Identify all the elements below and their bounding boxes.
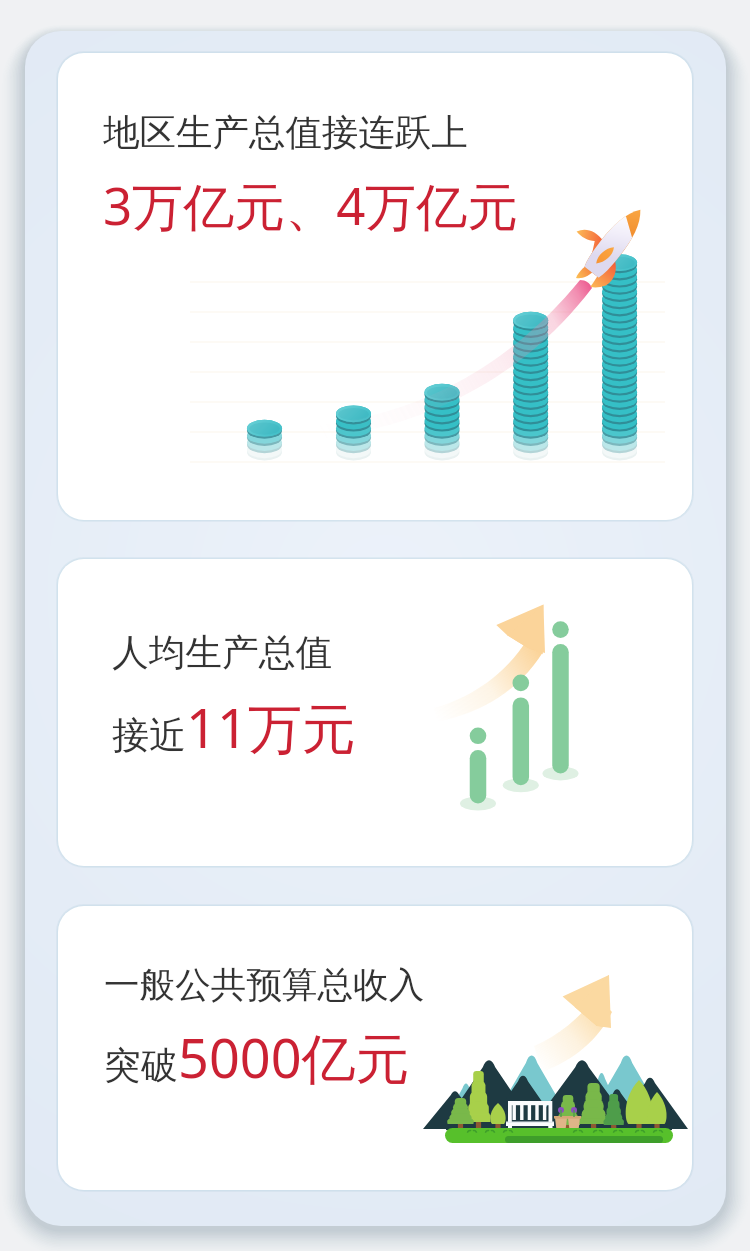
staticText: 地区生产总值接连跃上 — [103, 110, 468, 156]
staticText: 3万亿元、4万亿元 — [103, 170, 519, 240]
staticText: 接近11万元 — [112, 690, 356, 764]
button[interactable]: 地区生产总值接连跃上 — [58, 53, 692, 520]
button[interactable]: 一般公共预算总收入 — [58, 906, 692, 1190]
staticText: 人均生产总值 — [112, 630, 333, 676]
button[interactable]: 人均生产总值 — [58, 559, 692, 866]
staticText: 突破5000亿元 — [104, 1020, 410, 1094]
staticText: 一般公共预算总收入 — [104, 963, 425, 1008]
